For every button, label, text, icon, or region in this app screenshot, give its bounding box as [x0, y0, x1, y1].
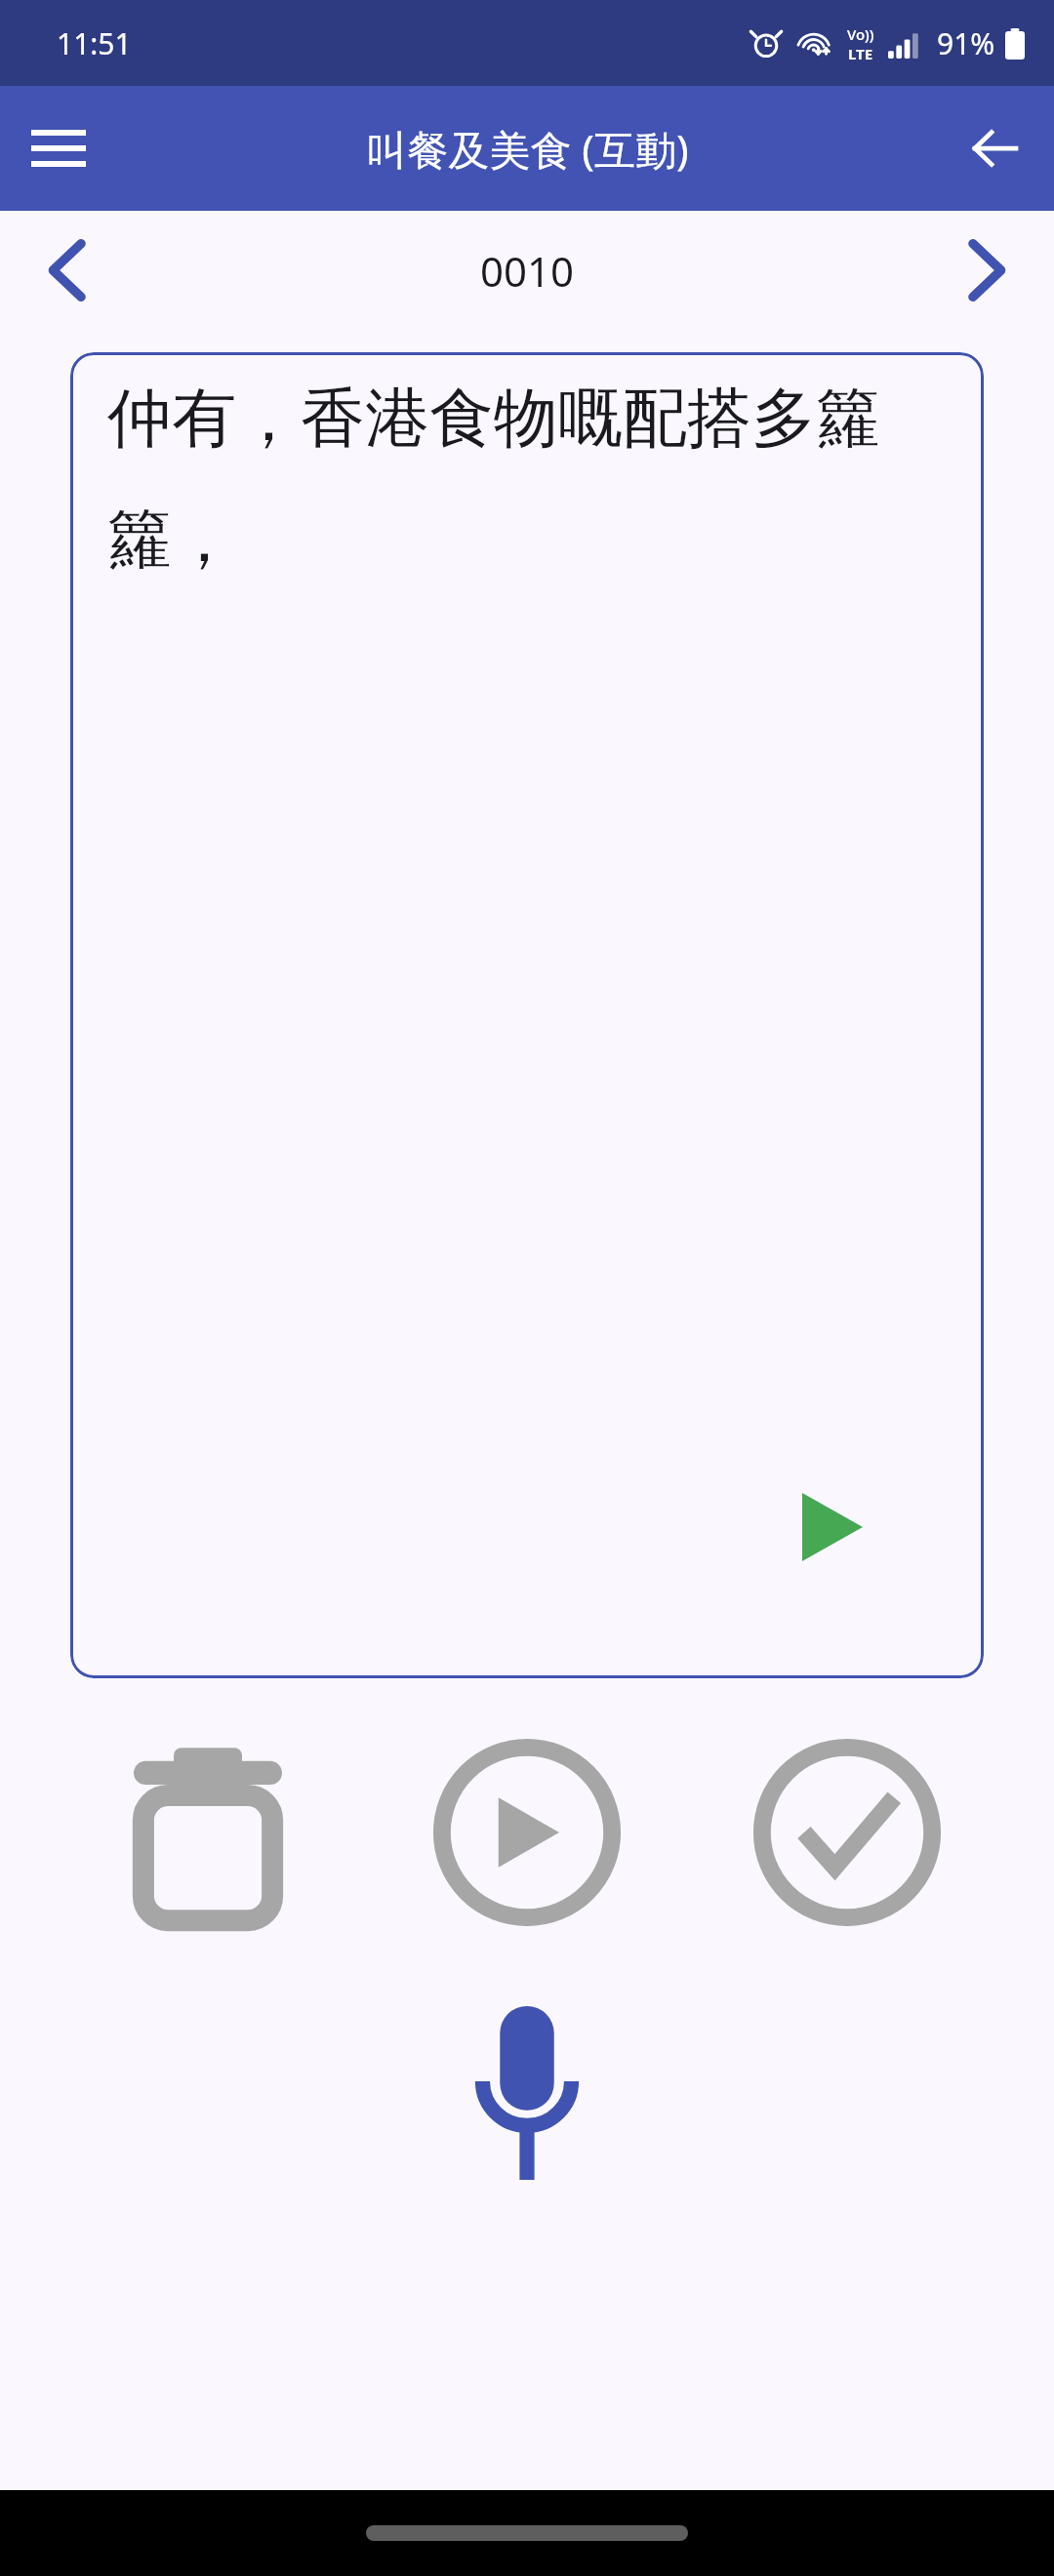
button[interactable]: Back — [958, 111, 1033, 185]
staticText: 91% — [937, 23, 995, 63]
button[interactable]: 仲有，香港食物嘅配搭多籮籮， — [70, 352, 984, 1678]
button[interactable]: Record — [415, 1981, 639, 2205]
button[interactable]: Next — [947, 229, 1029, 311]
button[interactable]: Menu — [21, 111, 96, 185]
staticText: 0010 — [480, 243, 575, 299]
button[interactable]: Confirm — [735, 1720, 959, 1945]
button[interactable]: Play recording — [415, 1720, 639, 1945]
button[interactable]: Previous — [25, 229, 107, 311]
staticText: Vo)) — [847, 24, 874, 44]
staticText: LTE — [848, 44, 873, 63]
staticText: 11:51 — [57, 23, 132, 63]
button[interactable]: Play sentence — [789, 1483, 876, 1571]
staticText: 仲有，香港食物嘅配搭多籮籮， — [107, 378, 964, 580]
button[interactable]: Delete — [96, 1720, 320, 1945]
staticText: 叫餐及美食 (互動) — [366, 121, 689, 177]
